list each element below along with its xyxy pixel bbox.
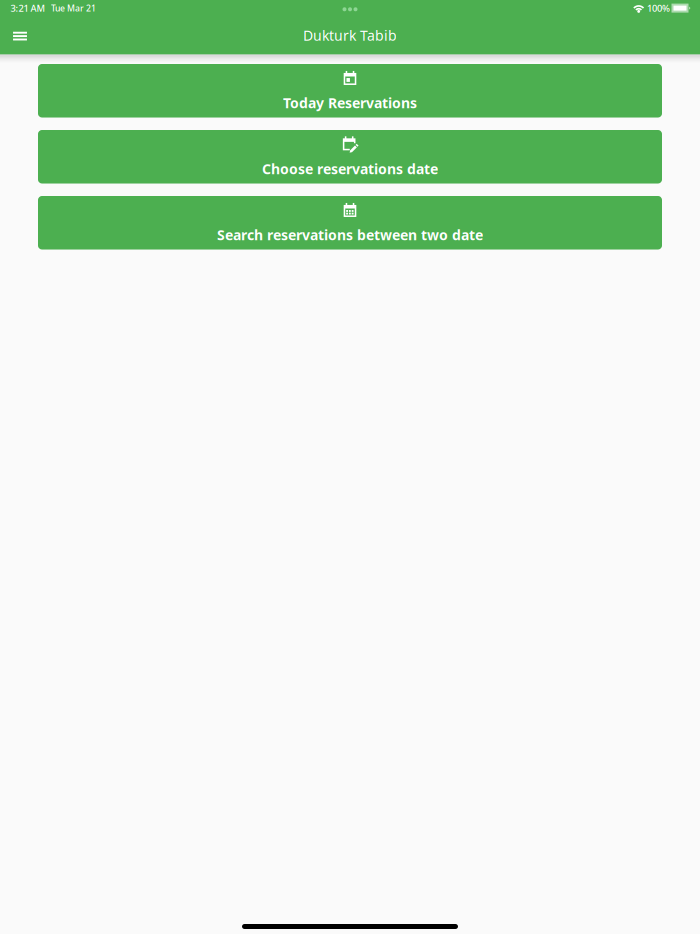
button[interactable]: Search reservations between two date — [38, 196, 662, 249]
staticText: Choose reservations date — [262, 159, 438, 178]
button[interactable]: Today Reservations — [38, 64, 662, 117]
button[interactable]: Choose reservations date — [38, 130, 662, 183]
button[interactable]: Menu — [0, 18, 40, 54]
staticText: 100% — [647, 2, 670, 14]
staticText: Dukturk Tabib — [303, 26, 397, 45]
staticText: Search reservations between two date — [217, 225, 483, 244]
staticText: 3:21 AM — [10, 2, 45, 14]
staticText: Tue Mar 21 — [51, 2, 96, 14]
staticText: Today Reservations — [283, 93, 417, 112]
